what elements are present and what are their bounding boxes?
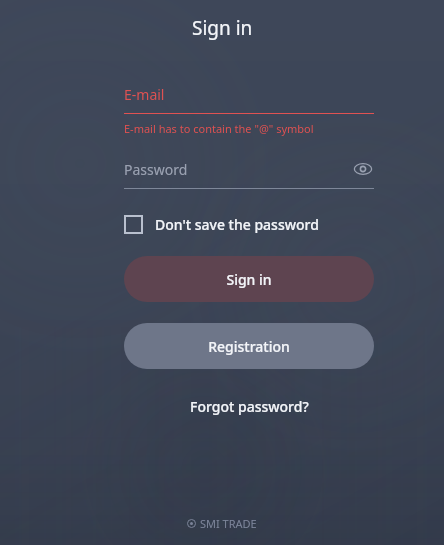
button[interactable]: Password <box>124 158 374 189</box>
staticText: E-mail <box>124 85 165 104</box>
staticText: E-mail has to contain the "@" symbol <box>124 121 374 136</box>
button[interactable]: E-mail <box>124 85 374 114</box>
staticText: Sign in <box>226 270 272 289</box>
staticText: Don't save the password <box>155 215 319 234</box>
staticText: Sign in <box>192 15 253 41</box>
staticText: Password <box>124 160 352 179</box>
button[interactable]: Forgot password? <box>124 397 374 416</box>
button[interactable]: Show password <box>352 158 374 180</box>
staticText: Registration <box>208 337 290 356</box>
staticText: Forgot password? <box>190 397 309 416</box>
button[interactable]: Registration <box>124 323 374 369</box>
button[interactable]: Sign in <box>124 256 374 302</box>
button[interactable]: Don't save the password <box>124 215 374 234</box>
staticText: SMI TRADE <box>200 516 257 531</box>
